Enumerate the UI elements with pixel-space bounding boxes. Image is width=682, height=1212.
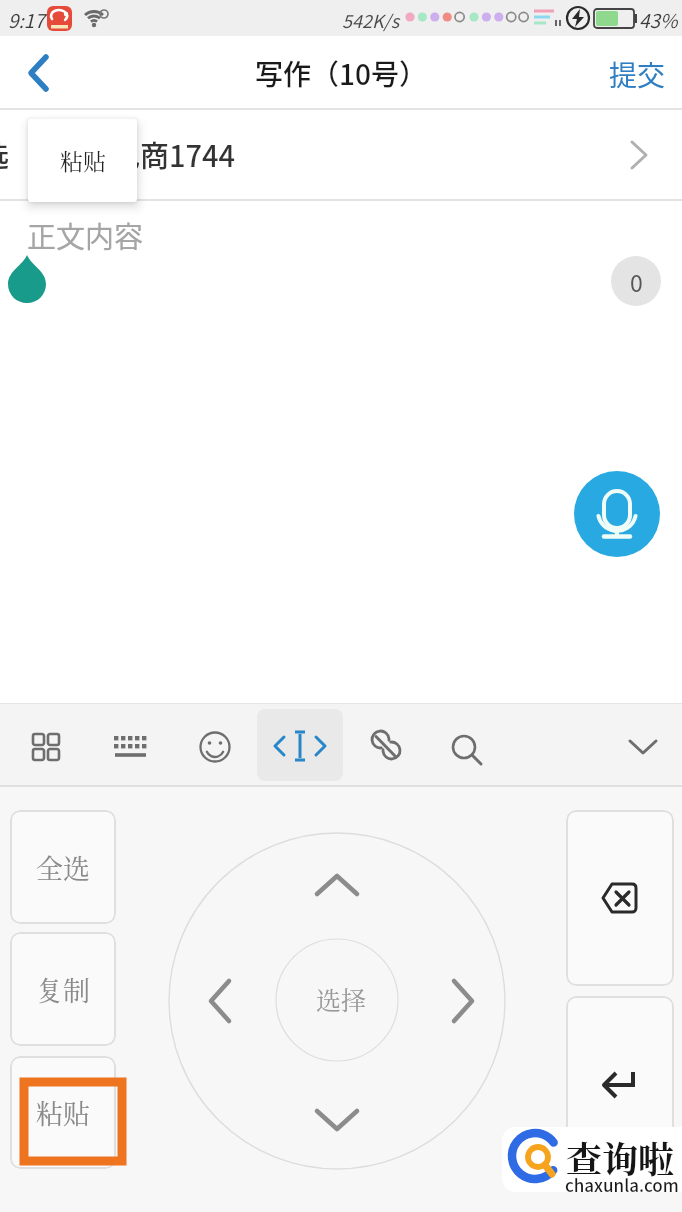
button[interactable]: 品牌电商1744 xyxy=(0,110,682,201)
button[interactable] xyxy=(0,36,682,110)
button[interactable]: 粘贴 xyxy=(28,119,137,202)
button[interactable] xyxy=(169,833,505,1169)
staticText: 粘贴 xyxy=(60,144,106,177)
staticText: 粘贴 xyxy=(36,1093,90,1132)
staticText: 复制 xyxy=(36,970,90,1009)
staticText: 43% xyxy=(639,6,678,34)
staticText: chaxunla.com xyxy=(565,1172,679,1197)
staticText: 正文内容 xyxy=(27,214,144,256)
staticText: 542K/s xyxy=(342,7,400,33)
button[interactable]: 粘贴 xyxy=(10,1056,116,1169)
button[interactable] xyxy=(574,471,660,557)
staticText: 全选 xyxy=(36,848,90,887)
staticText: 0 xyxy=(630,265,643,298)
button[interactable] xyxy=(566,810,674,986)
staticText: 选 xyxy=(0,133,10,175)
staticText: 写作（10号） xyxy=(255,53,427,94)
button[interactable] xyxy=(257,709,343,781)
button[interactable]: 复制 xyxy=(10,932,116,1046)
button[interactable]: 提交 xyxy=(600,54,675,94)
button[interactable] xyxy=(566,996,674,1172)
staticText: 选择 xyxy=(316,981,367,1017)
staticText: 提交 xyxy=(609,54,666,94)
staticText: 品牌电商1744 xyxy=(53,133,236,175)
staticText: 9:17 xyxy=(8,6,45,34)
button[interactable]: 全选 xyxy=(10,810,116,924)
staticText: 查询啦 xyxy=(566,1132,675,1184)
button[interactable]: 选择 xyxy=(278,937,404,1061)
